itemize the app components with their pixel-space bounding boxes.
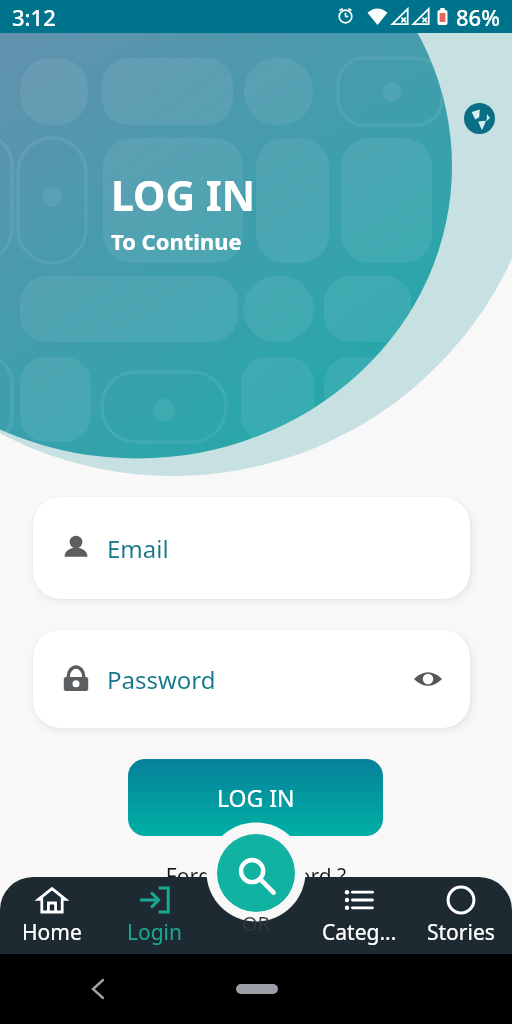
staticText: 3:12 [12, 2, 56, 32]
button[interactable]: Categ... [308, 885, 410, 947]
staticText: LOG IN [217, 782, 295, 813]
staticText: LOG IN [111, 167, 256, 223]
button[interactable]: Search [217, 834, 295, 912]
staticText: Email [107, 532, 169, 565]
staticText: Password [107, 663, 216, 696]
staticText: Login [127, 918, 183, 947]
staticText: Home [22, 918, 82, 947]
staticText: To Continue [111, 226, 242, 256]
button[interactable]: Home [0, 885, 103, 947]
button[interactable]: Forgot Password ? [0, 862, 512, 891]
button[interactable]: Password [33, 630, 470, 728]
staticText: Categ... [322, 918, 397, 947]
button[interactable]: Show password [412, 663, 444, 695]
staticText: 86% [456, 2, 500, 32]
staticText: Stories [427, 918, 495, 947]
button[interactable]: Email [33, 497, 470, 599]
button[interactable]: Login [103, 885, 206, 947]
staticText: OR [0, 910, 512, 937]
button[interactable]: Stories [410, 885, 512, 947]
button[interactable]: Language [464, 103, 495, 134]
button[interactable]: LOG IN [128, 759, 383, 836]
